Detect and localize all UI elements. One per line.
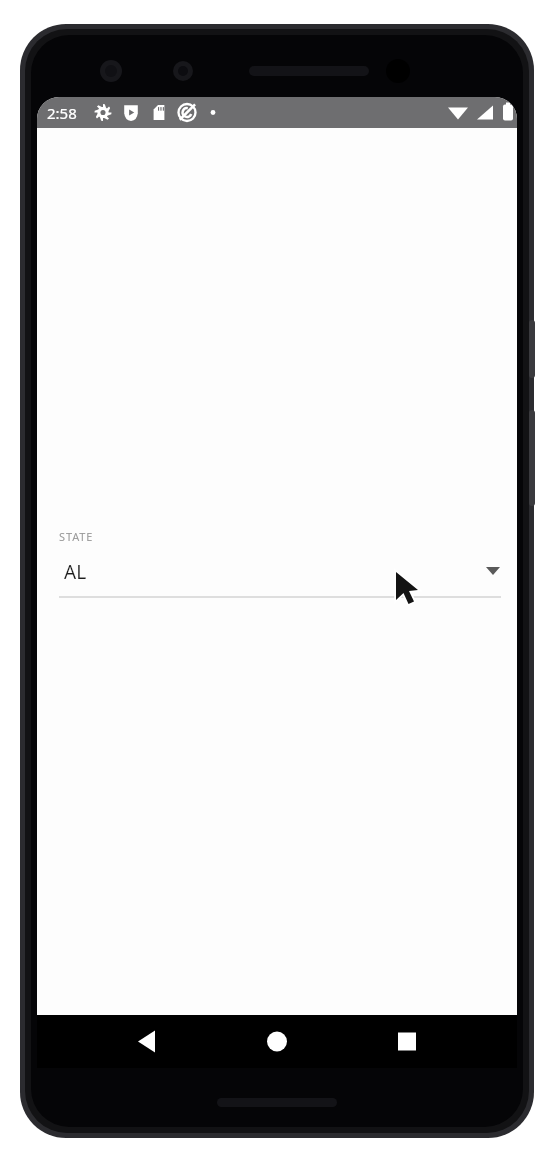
- button[interactable]: STATE: [59, 527, 501, 605]
- staticText: AL: [64, 559, 87, 585]
- staticText: STATE: [59, 529, 94, 544]
- staticText: 2:58: [47, 103, 77, 123]
- button[interactable]: Home: [247, 1015, 307, 1068]
- button[interactable]: Recent apps: [377, 1015, 437, 1068]
- button[interactable]: Back: [117, 1015, 177, 1068]
